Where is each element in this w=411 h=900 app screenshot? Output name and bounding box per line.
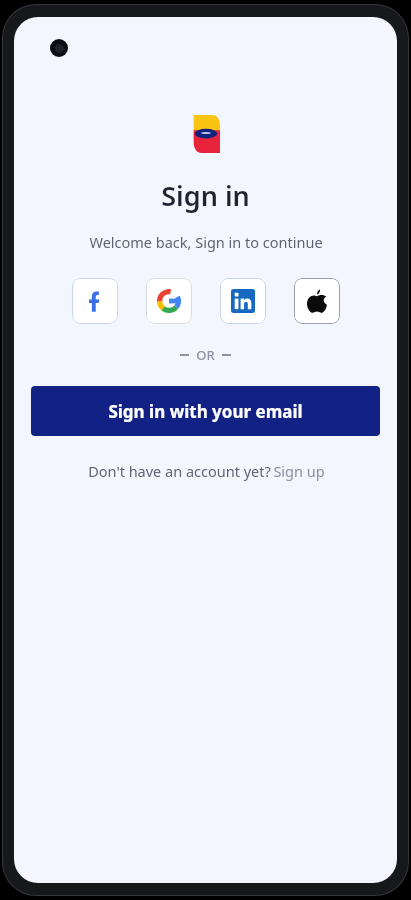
button[interactable]: Sign in with Facebook bbox=[72, 278, 118, 324]
button[interactable]: Sign in with LinkedIn bbox=[220, 278, 266, 324]
staticText: Sign in with your email bbox=[108, 400, 303, 423]
button[interactable]: Sign in with Apple bbox=[294, 278, 340, 324]
button[interactable]: Sign in with Google bbox=[146, 278, 192, 324]
staticText: Welcome back, Sign in to continue bbox=[89, 232, 323, 252]
button[interactable]: Sign in with your email bbox=[31, 386, 380, 436]
staticText: OR bbox=[196, 346, 215, 364]
staticText: Sign up bbox=[273, 461, 325, 481]
staticText: Don't have an account yet? bbox=[86, 461, 273, 481]
staticText: Sign in bbox=[161, 177, 250, 214]
button[interactable]: Don't have an account yet? bbox=[80, 459, 331, 483]
